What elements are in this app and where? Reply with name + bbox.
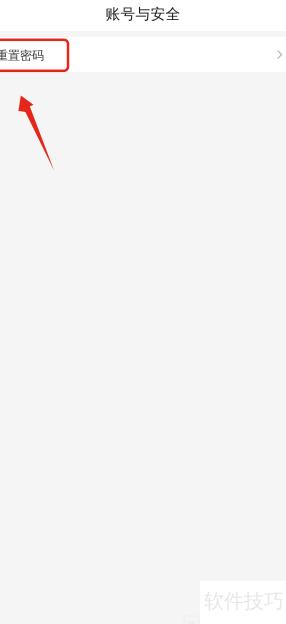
staticText: 重置密码 <box>0 48 44 63</box>
staticText: 软件技巧 <box>204 589 284 614</box>
button[interactable]: 重置密码 <box>0 37 286 72</box>
staticText: 账号与安全 <box>105 5 180 23</box>
